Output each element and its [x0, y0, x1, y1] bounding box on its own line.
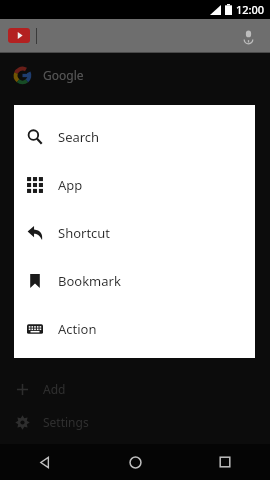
button[interactable]: Bookmark [14, 257, 255, 305]
staticText: Action [58, 320, 97, 338]
staticText: Bookmark [58, 272, 121, 290]
button[interactable]: Add [0, 372, 270, 405]
button[interactable]: Shortcut [14, 209, 255, 257]
button[interactable]: App [14, 161, 255, 209]
button[interactable]: Action [14, 305, 255, 353]
button[interactable]: YouTube [8, 28, 30, 43]
button[interactable]: Google [0, 58, 270, 91]
button[interactable]: Home [90, 444, 180, 480]
button[interactable]: Recent apps [180, 444, 270, 480]
staticText: App [58, 176, 83, 194]
staticText: Search [58, 128, 100, 146]
button[interactable] [0, 91, 270, 124]
button[interactable]: Settings [0, 405, 270, 438]
staticText: Shortcut [58, 224, 111, 242]
button[interactable]: YouTube [0, 19, 270, 52]
button[interactable]: Search [14, 113, 255, 161]
staticText: Add [43, 381, 66, 397]
button[interactable]: Voice search [238, 26, 258, 46]
staticText: 12:00 [236, 2, 265, 17]
button[interactable]: Back [0, 444, 90, 480]
staticText: Google [43, 67, 84, 83]
staticText: Settings [43, 414, 89, 430]
